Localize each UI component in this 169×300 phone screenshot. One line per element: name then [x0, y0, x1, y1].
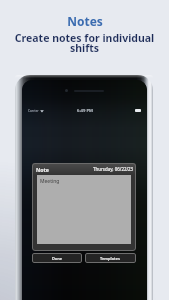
button[interactable]: Templates — [85, 253, 136, 263]
staticText: Done — [52, 256, 63, 261]
button[interactable]: Done — [32, 253, 82, 263]
staticText: Templates — [100, 256, 121, 261]
staticText: Create notes for individual shifts — [7, 31, 162, 55]
staticText: 6:49 PM — [77, 108, 93, 114]
staticText: Thursday, 06/22/23 — [93, 166, 134, 172]
staticText: Meeting — [40, 178, 60, 185]
staticText: Note — [36, 166, 49, 173]
staticText: Notes — [67, 13, 103, 29]
staticText: Carrier — [28, 109, 39, 113]
